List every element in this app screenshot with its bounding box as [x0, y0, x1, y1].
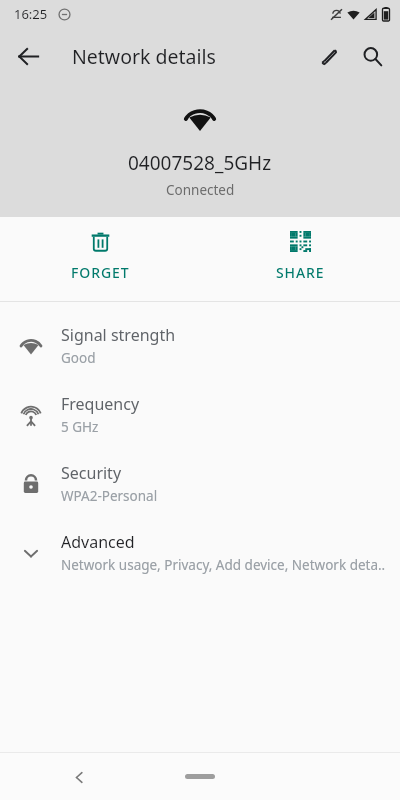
staticText: SHARE: [276, 263, 325, 282]
staticText: 16:25: [14, 5, 48, 23]
button[interactable]: Back: [6, 34, 50, 78]
staticText: WPA2-Personal: [61, 487, 158, 505]
staticText: Security: [61, 462, 122, 484]
button[interactable]: Search: [350, 34, 394, 78]
button[interactable]: Edit: [306, 34, 350, 78]
staticText: Connected: [166, 181, 235, 199]
button[interactable]: Back: [62, 760, 96, 794]
staticText: Good: [61, 349, 96, 367]
button[interactable]: Frequency: [0, 380, 400, 449]
staticText: 04007528_5GHz: [128, 150, 272, 176]
button[interactable]: FORGET: [0, 217, 200, 301]
button[interactable]: Home: [185, 774, 215, 779]
button[interactable]: SHARE: [200, 217, 400, 301]
staticText: Frequency: [61, 393, 140, 415]
button[interactable]: Signal strength: [0, 311, 400, 380]
button[interactable]: Advanced: [0, 518, 400, 587]
staticText: Network details: [72, 43, 216, 70]
staticText: Signal strength: [61, 324, 176, 346]
button[interactable]: Security: [0, 449, 400, 518]
staticText: Network usage, Privacy, Add device, Netw…: [61, 556, 386, 574]
staticText: Advanced: [61, 531, 135, 553]
staticText: FORGET: [71, 263, 130, 282]
staticText: 5 GHz: [61, 418, 99, 436]
